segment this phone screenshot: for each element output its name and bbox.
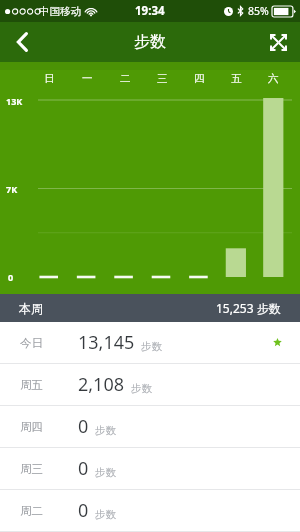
button[interactable]: Back [0,22,44,62]
staticText: 0 [78,456,89,481]
staticText: 周五 [20,378,43,392]
staticText: 0 [78,414,89,439]
staticText: 周二 [20,504,43,518]
staticText: 步数 [95,466,116,479]
staticText: 0 [8,271,14,283]
staticText: 步数 [95,424,116,437]
staticText: 13,145 [78,330,135,355]
staticText: 六 [268,72,279,85]
staticText: 四 [194,72,205,85]
button[interactable]: 周二 [0,490,300,531]
staticText: 步数 [131,382,152,395]
button[interactable]: 周三 [0,448,300,489]
staticText: 7K [6,183,18,195]
staticText: 本周 [19,301,43,316]
button[interactable]: 周四 [0,406,300,447]
staticText: 2,108 [78,372,125,397]
button[interactable]: 本周 [0,294,300,322]
staticText: 周四 [20,420,43,434]
staticText: 今日 [20,336,43,350]
staticText: 85% [248,4,269,18]
staticText: 步数 [141,340,162,353]
staticText: 步数 [134,32,166,52]
staticText: 周三 [20,462,43,476]
staticText: 五 [231,72,242,85]
button[interactable]: Expand [256,22,300,62]
staticText: 13K [6,95,23,107]
button[interactable]: 今日 [0,322,300,363]
staticText: 一 [82,72,93,85]
staticText: 中国移动 [39,5,81,18]
button[interactable]: 周五 [0,364,300,405]
staticText: 日 [44,72,55,85]
staticText: 三 [157,72,168,85]
staticText: 19:34 [135,3,165,19]
staticText: 15,253 步数 [216,300,281,316]
staticText: 0 [78,498,89,523]
staticText: 步数 [95,508,116,521]
staticText: 二 [120,72,131,85]
